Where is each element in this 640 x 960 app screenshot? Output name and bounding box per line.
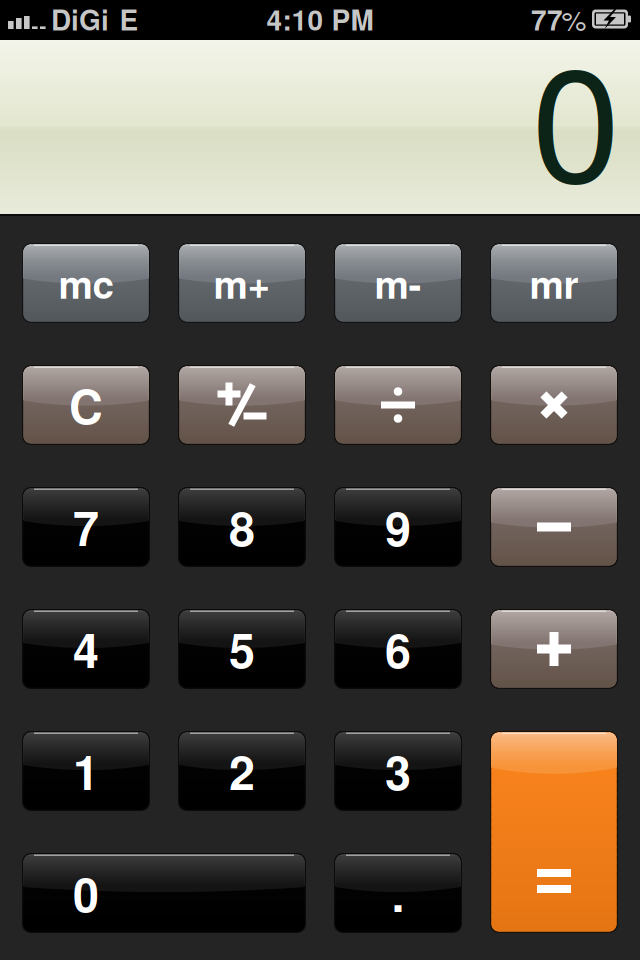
staticText: m- [374,255,421,311]
staticText: 3 [385,738,411,804]
button[interactable]: 3 [334,731,462,811]
button[interactable]: Divide [334,365,462,445]
button[interactable]: 8 [178,487,306,567]
button[interactable]: Plus minus [178,365,306,445]
button[interactable]: 4 [22,609,150,689]
button[interactable]: Clear [22,365,150,445]
staticText: DiGi [51,0,109,39]
button[interactable]: Decimal point [334,853,462,933]
button[interactable]: 7 [22,487,150,567]
staticText: % [561,0,586,39]
staticText: 5 [229,616,255,682]
staticText: 4 [73,616,99,682]
button[interactable]: Multiply [490,365,618,445]
staticText: 2 [229,738,255,804]
staticText: 6 [385,616,411,682]
staticText: mr [529,255,578,311]
button[interactable]: 6 [334,609,462,689]
button[interactable]: 0 [22,853,306,933]
button[interactable]: Equals [490,731,618,933]
button[interactable]: 2 [178,731,306,811]
staticText: E [119,0,138,39]
button[interactable]: 5 [178,609,306,689]
staticText: 1 [73,738,99,804]
staticText: 0 [531,0,620,228]
staticText: 9 [385,494,411,560]
staticText: m+ [213,255,270,311]
button[interactable]: 1 [22,731,150,811]
button[interactable]: Minus [490,487,618,567]
staticText: 0 [73,860,99,926]
staticText: 4:10 PM [266,0,373,39]
staticText: mc [58,255,113,311]
button[interactable]: mr [490,243,618,323]
button[interactable]: m plus [178,243,306,323]
button[interactable]: 9 [334,487,462,567]
staticText: . [391,860,404,926]
button[interactable]: m minus [334,243,462,323]
staticText: 7 [73,494,99,560]
button[interactable]: mc [22,243,150,323]
staticText: 77 [531,0,563,39]
staticText: C [69,372,103,438]
button[interactable]: Plus [490,609,618,689]
staticText: 8 [229,494,255,560]
